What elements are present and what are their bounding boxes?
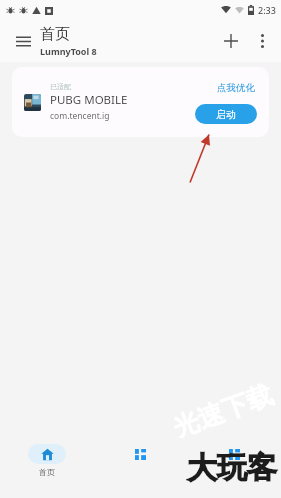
- staticText: 首页: [40, 25, 70, 44]
- button[interactable]: Add: [215, 25, 247, 57]
- staticText: 启动: [216, 108, 236, 121]
- staticText: 已适配: [50, 82, 71, 91]
- staticText: com.tencent.ig: [50, 110, 110, 122]
- staticText: 首页: [39, 467, 55, 477]
- staticText: PUBG MOBILE: [50, 92, 128, 108]
- button[interactable]: More options: [247, 26, 277, 56]
- button[interactable]: 点我优化: [215, 81, 257, 95]
- button[interactable]: Nav item: [187, 444, 281, 498]
- button[interactable]: Menu: [8, 26, 38, 56]
- staticText: 大玩客: [187, 449, 277, 487]
- button[interactable]: Nav item: [93, 444, 187, 498]
- button[interactable]: 启动: [195, 104, 257, 124]
- staticText: 光速下载: [168, 378, 277, 445]
- staticText: 2:33: [258, 4, 276, 16]
- staticText: LumnyTool 8: [40, 45, 97, 57]
- button[interactable]: 首页: [0, 444, 93, 498]
- button[interactable]: 已适配: [12, 67, 269, 137]
